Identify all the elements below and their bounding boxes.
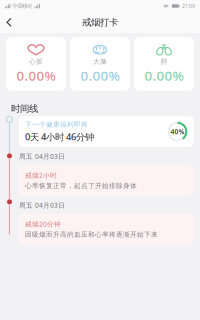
staticText: 21:59 (182, 2, 195, 10)
button[interactable]: 大脑 (70, 37, 130, 91)
staticText: 0天 4小时 46分钟 (25, 130, 94, 143)
staticText: 40% (170, 127, 184, 136)
button[interactable]: 肺 (134, 37, 194, 91)
staticText: 大脑 (93, 57, 107, 66)
button[interactable]: Back (0, 12, 18, 32)
button[interactable]: 心脏 (6, 37, 66, 91)
staticText: 0.00% (144, 67, 183, 84)
staticText: 周五 04月03日 (19, 201, 65, 210)
staticText: 戒烟20分钟 (25, 220, 61, 229)
staticText: 时间线 (11, 103, 38, 114)
staticText: 下一个健康福利即将 (25, 120, 88, 129)
staticText: 中国移动 (12, 3, 32, 9)
staticText: 0.00% (80, 67, 119, 84)
staticText: 肺 (160, 57, 167, 66)
staticText: 0.00% (16, 67, 55, 84)
staticText: 周五 04月03日 (19, 152, 65, 161)
staticText: 心脏 (29, 57, 43, 66)
staticText: 戒烟2小时 (25, 171, 57, 180)
staticText: 因吸烟而升高的血压和心率将逐渐开始下来 (25, 230, 158, 239)
staticText: 戒烟打卡 (82, 17, 118, 28)
staticText: 心率恢复正常，起点了开始排除身体 (25, 182, 137, 190)
